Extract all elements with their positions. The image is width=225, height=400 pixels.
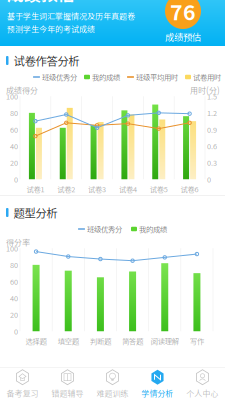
staticText: 班级优秀分 <box>42 72 77 82</box>
staticText: 错题辅导 <box>51 387 83 399</box>
staticText: 成绩得分 <box>6 84 38 96</box>
staticText: 简答题 <box>122 336 143 346</box>
staticText: 试卷3 <box>88 184 106 194</box>
staticText: 试卷4 <box>119 184 137 194</box>
staticText: 60 <box>10 124 18 135</box>
staticText: 20 <box>10 309 18 320</box>
staticText: 100 <box>6 243 18 253</box>
staticText: 题型分析 <box>13 204 57 221</box>
staticText: 填空题 <box>58 336 79 346</box>
staticText: 试卷6 <box>181 184 199 194</box>
staticText: 100 <box>6 91 18 101</box>
staticText: 76 <box>170 0 196 26</box>
staticText: 判断题 <box>90 336 111 346</box>
staticText: 班级优秀分 <box>87 224 122 234</box>
staticText: 40 <box>10 293 18 303</box>
staticText: 备考复习 <box>6 387 38 399</box>
staticText: 0.6 <box>207 141 217 151</box>
staticText: 试卷5 <box>150 184 168 194</box>
staticText: 60 <box>10 276 18 287</box>
staticText: 80 <box>10 259 18 270</box>
staticText: 1.5 <box>207 91 217 101</box>
staticText: 基于学生词汇掌握情况及历年真题卷 <box>7 10 135 22</box>
staticText: 班级平均用时 <box>136 72 178 82</box>
staticText: 用时(分) <box>190 84 220 96</box>
button[interactable]: 个人中心 <box>180 369 225 399</box>
staticText: 0 <box>207 174 211 184</box>
button[interactable]: 学情分析 <box>135 369 180 399</box>
staticText: 20 <box>10 157 18 168</box>
staticText: 个人中心 <box>186 387 218 399</box>
staticText: 0 <box>14 326 18 336</box>
staticText: 0 <box>14 174 18 184</box>
staticText: 选择题 <box>26 336 47 346</box>
staticText: 试卷用时 <box>193 72 221 82</box>
button[interactable]: 备考复习 <box>0 369 45 399</box>
staticText: 试卷作答分析 <box>13 52 79 69</box>
staticText: 我的成绩 <box>92 72 120 82</box>
staticText: 1.2 <box>207 107 217 118</box>
button[interactable]: 难题训练 <box>90 369 135 399</box>
staticText: 我的成绩 <box>139 224 167 234</box>
staticText: 试卷2 <box>57 184 75 194</box>
staticText: 80 <box>10 107 18 118</box>
staticText: 阅读理解 <box>151 336 179 346</box>
staticText: 写作 <box>190 336 204 346</box>
staticText: 成绩预估 <box>165 30 201 43</box>
staticText: 学情分析 <box>141 387 173 399</box>
staticText: 预测学生今年的考试成绩 <box>7 23 95 35</box>
staticText: 成绩预估 <box>7 0 75 6</box>
staticText: 得分率 <box>6 236 30 248</box>
button[interactable]: 错题辅导 <box>45 369 90 399</box>
staticText: 0.9 <box>207 124 217 135</box>
staticText: 试卷1 <box>26 184 44 194</box>
staticText: 40 <box>10 141 18 151</box>
staticText: 难题训练 <box>96 387 128 399</box>
staticText: 0.3 <box>207 157 217 168</box>
